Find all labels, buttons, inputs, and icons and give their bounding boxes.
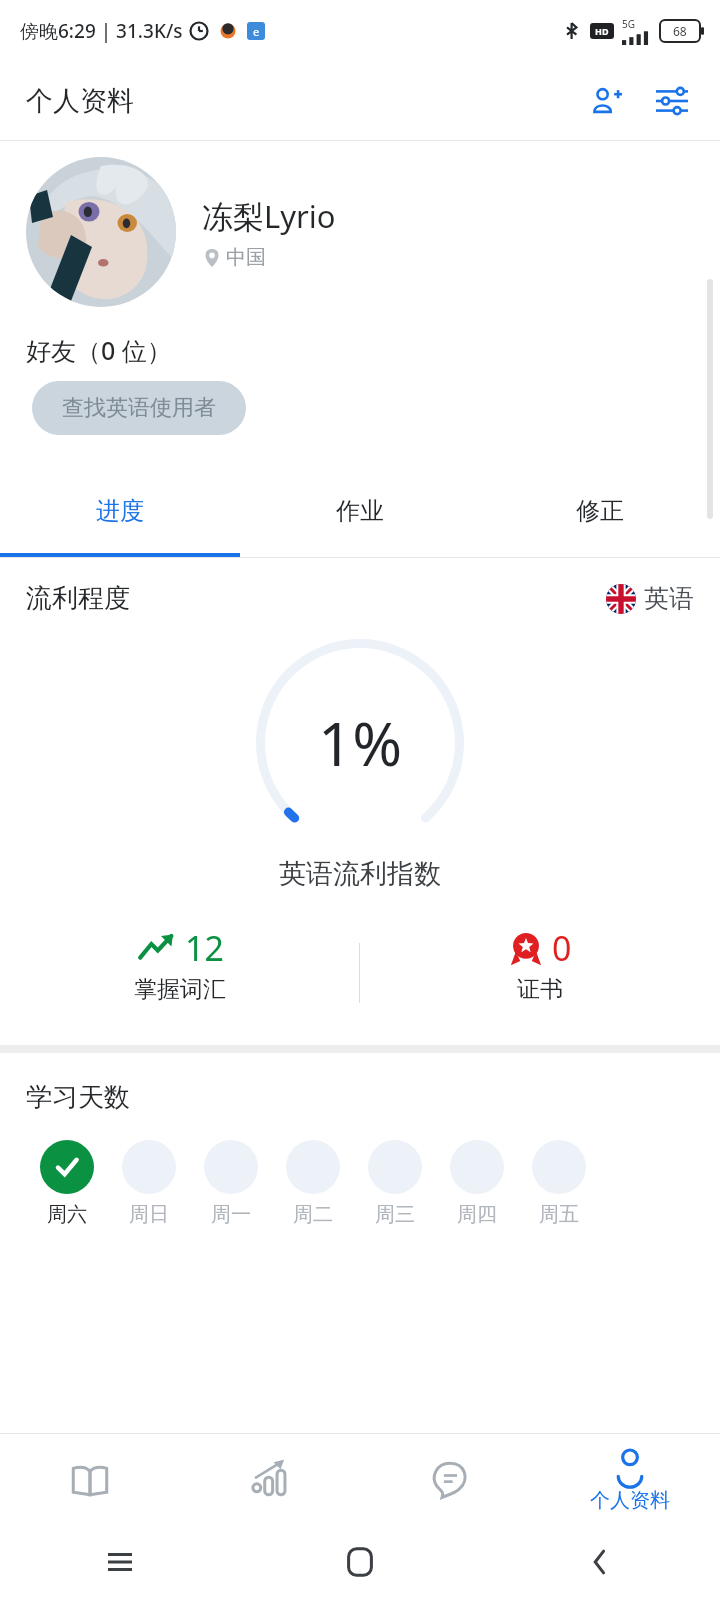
button[interactable]: 0 [360,925,720,1021]
staticText: 5G [622,17,635,31]
staticText: 68 [673,23,687,39]
button[interactable]: 周二 [272,1140,354,1227]
button[interactable]: 进度 [0,469,240,553]
button[interactable]: 12 [0,925,359,1021]
staticText: 英语流利指数 [0,857,720,891]
staticText: 流利程度 [26,582,130,615]
staticText: e [253,24,260,39]
staticText: 中国 [226,245,266,270]
button[interactable]: Home [333,1535,387,1589]
staticText: 英语 [644,583,694,614]
staticText: 傍晚6:29 | 31.3K/s [20,18,183,44]
staticText: 好友（0 位） [26,333,172,367]
button[interactable]: 周三 [354,1140,436,1227]
staticText: 作业 [336,496,384,526]
staticText: 掌握词汇 [134,975,226,1004]
staticText: 1% [318,702,403,784]
staticText: 周六 [47,1202,87,1227]
staticText: 查找英语使用者 [62,394,216,422]
button[interactable]: 修正 [480,469,720,553]
button[interactable]: Chat [360,1434,540,1524]
button[interactable]: 个人资料 [540,1434,720,1524]
staticText: 进度 [96,496,144,526]
staticText: 12 [185,925,224,971]
button[interactable]: 周五 [518,1140,600,1227]
button[interactable]: 周六 [26,1140,108,1227]
staticText: 周二 [293,1202,333,1227]
staticText: 0 [552,925,572,971]
button[interactable]: 查找英语使用者 [32,381,246,435]
button[interactable]: Progress [180,1434,360,1524]
button[interactable]: Lessons [0,1434,180,1524]
staticText: 周日 [129,1202,169,1227]
staticText: 周五 [539,1202,579,1227]
button[interactable]: 周一 [190,1140,272,1227]
staticText: 周一 [211,1202,251,1227]
button[interactable]: Add friend [580,75,632,127]
staticText: 冻梨Lyrio [202,195,336,237]
staticText: 证书 [517,975,563,1004]
staticText: 个人资料 [590,1488,670,1513]
staticText: 学习天数 [26,1081,130,1114]
staticText: 周三 [375,1202,415,1227]
button[interactable]: Recents [93,1535,147,1589]
button[interactable]: 作业 [240,469,480,553]
button[interactable]: 英语 [606,583,694,614]
button[interactable]: Settings [646,75,698,127]
button[interactable]: 周日 [108,1140,190,1227]
staticText: 周四 [457,1202,497,1227]
button[interactable]: 周四 [436,1140,518,1227]
staticText: 个人资料 [26,84,134,118]
button[interactable]: Back [573,1535,627,1589]
button[interactable] [26,157,176,307]
staticText: 修正 [576,496,624,526]
staticText: HD [595,25,609,37]
